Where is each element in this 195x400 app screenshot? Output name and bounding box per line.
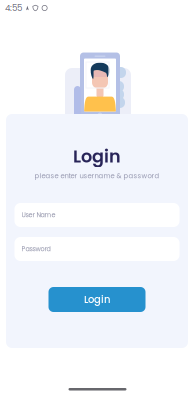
staticText: Password: [21, 244, 50, 253]
staticText: Login: [73, 144, 121, 169]
staticText: 4:55: [5, 2, 22, 14]
staticText: User Name: [21, 210, 55, 219]
button[interactable]: Login: [48, 287, 145, 312]
staticText: please enter username & password: [34, 171, 159, 180]
staticText: Login: [84, 292, 110, 306]
button[interactable]: Password: [14, 237, 179, 261]
button[interactable]: User Name: [14, 203, 179, 227]
